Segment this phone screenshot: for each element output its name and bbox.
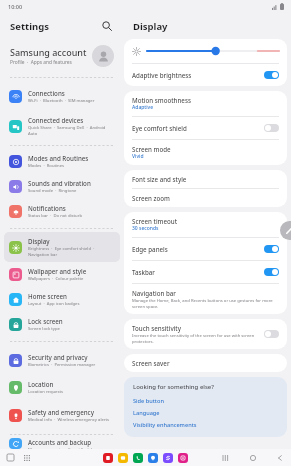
staticText: Screen timeout [132,217,178,225]
staticText: Layout · App icon badges [28,301,80,307]
button[interactable]: Lock screen [4,312,120,337]
staticText: Safety and emergency [28,408,94,416]
button[interactable]: Connections [4,81,120,111]
button[interactable]: Navigation bar [124,284,287,314]
staticText: Eye comfort shield [132,124,187,132]
staticText: Wallpaper and style [28,267,87,275]
staticText: Increase the touch sensitivity of the sc… [132,333,259,344]
button[interactable]: Taskbar [124,261,287,283]
staticText: 30 seconds [132,225,159,232]
button[interactable]: Edit [280,221,291,240]
button[interactable]: Motion smoothness [124,91,287,116]
button[interactable] [124,39,287,63]
staticText: Screen lock type [28,326,60,332]
staticText: Modes and Routines [28,154,89,162]
button[interactable]: Edge panels [124,238,287,260]
staticText: Adaptive [132,104,154,111]
staticText: Sound mode · Ringtone [28,188,77,194]
button[interactable]: App 0 [103,453,113,463]
button[interactable]: Screen saver [124,354,287,372]
staticText: Display [133,20,168,33]
button[interactable]: Eye comfort shield [124,117,287,139]
staticText: Manage accounts · Smart Switch [28,447,94,449]
staticText: Accounts and backup [28,438,92,446]
button[interactable]: Accounts and backup [4,438,120,449]
staticText: Wi-Fi · Bluetooth · SIM manager [28,98,95,104]
button[interactable]: Font size and style [124,170,287,188]
staticText: Location requests [28,389,63,395]
button[interactable]: Adaptive brightness [124,64,287,86]
staticText: Display [28,237,50,245]
staticText: Location [28,380,54,388]
staticText: Adaptive brightness [132,71,192,79]
staticText: Motion smoothness [132,96,191,104]
staticText: Screen saver [132,359,170,367]
button[interactable]: App 1 [118,453,128,463]
staticText: Connected devices [28,116,84,124]
button[interactable]: Display [4,232,120,262]
button[interactable]: Back [274,452,285,463]
button[interactable]: Notifications [4,199,120,224]
staticText: Sounds and vibration [28,179,91,187]
staticText: Biometrics · Permission manager [28,362,96,368]
button[interactable]: Samsung account [0,39,124,73]
staticText: Home screen [28,292,67,300]
staticText: Wallpapers · Colour palette [28,276,84,282]
staticText: Security and privacy [28,353,88,361]
button[interactable]: Search [99,18,115,34]
button[interactable]: Screen timeout [124,212,287,237]
button[interactable]: All apps [21,452,32,463]
staticText: Status bar · Do not disturb [28,213,82,219]
button[interactable]: Screen zoom [124,189,287,207]
staticText: Screen mode [132,145,171,153]
button[interactable]: Home screen [4,287,120,312]
staticText: Medical info · Wireless emergency alerts [28,417,110,423]
staticText: Settings [10,20,49,33]
button[interactable]: Language [133,407,278,419]
staticText: 10:00 [8,3,23,10]
staticText: Manage the Home, Back, and Recents butto… [132,298,279,309]
staticText: Notifications [28,204,66,212]
button[interactable]: Visibility enhancements [133,419,278,431]
button[interactable]: Sounds and vibration [4,174,120,199]
staticText: Language [133,409,160,417]
staticText: Font size and style [132,175,187,183]
staticText: Touch sensitivity [132,324,181,332]
button[interactable]: App 3 [148,453,158,463]
staticText: Screen zoom [132,194,170,202]
staticText: Modes · Routines [28,163,65,169]
button[interactable]: App 2 [133,453,143,463]
button[interactable]: Location [4,375,120,400]
staticText: Connections [28,89,65,97]
staticText: Taskbar [132,268,155,276]
staticText: Samsung account [10,46,87,58]
staticText: Profile · Apps and features [10,59,72,66]
button[interactable]: Safety and emergency [4,400,120,430]
button[interactable]: Keyboard [5,452,16,463]
staticText: Brightness · Eye comfort shield · Naviga… [28,246,115,257]
staticText: Visibility enhancements [133,421,197,429]
button[interactable]: App 5 [178,453,188,463]
button[interactable]: Security and privacy [4,345,120,375]
button[interactable]: Wallpaper and style [4,262,120,287]
button[interactable]: Screen mode [124,140,287,165]
staticText: Lock screen [28,317,63,325]
button[interactable]: App 4 [163,453,173,463]
button[interactable]: Home [247,452,258,463]
staticText: Looking for something else? [133,383,214,391]
staticText: Side button [133,397,164,405]
button[interactable]: Touch sensitivity [124,319,287,349]
button[interactable]: Modes and Routines [4,149,120,174]
button[interactable]: Connected devices [4,111,120,141]
staticText: Navigation bar [132,289,176,297]
staticText: Quick Share · Samsung DeX · Android Auto [28,125,115,136]
staticText: Edge panels [132,245,168,253]
button[interactable]: Side button [133,395,278,407]
staticText: Vivid [132,153,144,160]
button[interactable]: Recents [220,452,231,463]
